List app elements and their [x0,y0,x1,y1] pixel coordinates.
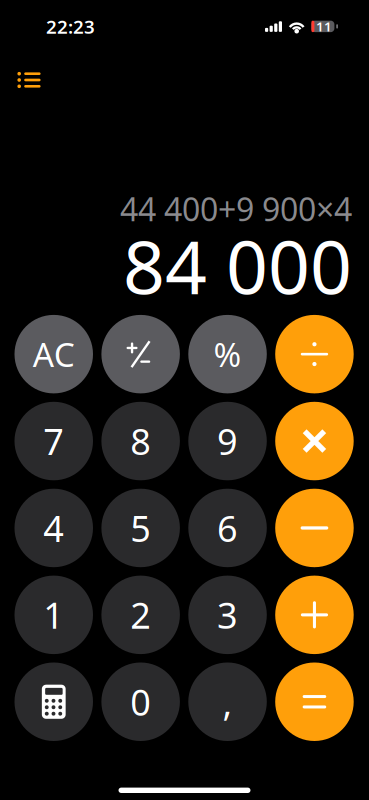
staticText: 44 400+9 900×4 [120,188,352,230]
button[interactable]: Decimal separator [188,662,267,741]
staticText: 11 [316,17,332,35]
staticText: 9 [217,417,238,465]
button[interactable]: Add [275,576,354,654]
button[interactable]: Subtract [275,489,354,567]
button[interactable]: 9 [188,402,267,480]
staticText: 2 [130,591,151,639]
button[interactable]: Multiply [275,402,354,480]
button[interactable]: Percent [188,315,267,393]
staticText: 0 [130,678,151,726]
button[interactable]: AC [14,315,93,393]
staticText: 5 [130,504,151,552]
staticText: 3 [217,591,238,639]
button[interactable]: 4 [14,489,93,567]
staticText: 84 000 [123,217,352,315]
staticText: 7 [43,417,64,465]
button[interactable]: Equals [275,662,354,741]
staticText: 22:23 [46,14,95,39]
button[interactable]: 1 [14,576,93,654]
button[interactable]: 0 [101,662,180,741]
button[interactable]: History [7,58,51,102]
button[interactable]: Divide [275,315,354,393]
staticText: AC [33,332,75,376]
button[interactable]: 5 [101,489,180,567]
staticText: , [223,678,233,726]
staticText: 1 [43,591,64,639]
button[interactable]: Scientific calculator [14,662,93,741]
button[interactable]: 3 [188,576,267,654]
button[interactable]: 2 [101,576,180,654]
staticText: 4 [43,504,64,552]
staticText: 6 [217,504,238,552]
button[interactable]: 7 [14,402,93,480]
button[interactable]: 8 [101,402,180,480]
button[interactable]: Plus minus [101,315,180,393]
staticText: 8 [130,417,151,465]
button[interactable]: 6 [188,489,267,567]
staticText: % [214,332,242,376]
